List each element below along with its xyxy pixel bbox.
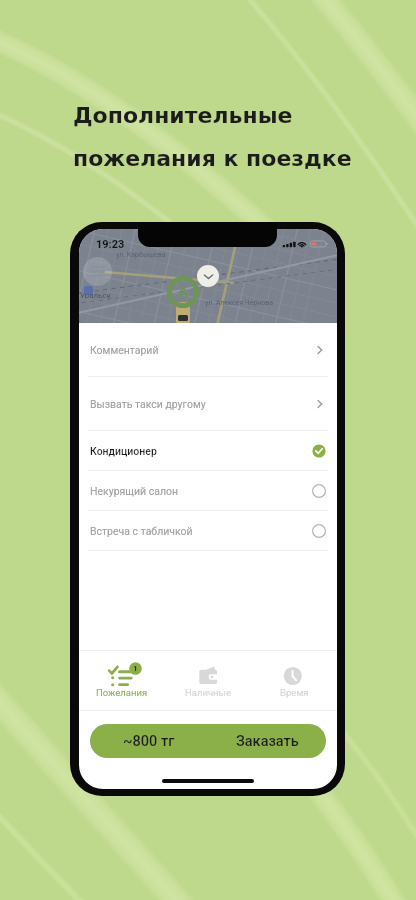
button[interactable]: Время	[251, 651, 337, 710]
button[interactable]: Встреча с табличкой	[79, 511, 337, 550]
staticText: Дополнительные	[73, 103, 293, 129]
button[interactable]: Collapse map	[197, 265, 219, 287]
staticText: Время	[280, 687, 309, 698]
staticText: ул. Алексея Чернова	[205, 299, 274, 307]
staticText: Вызвать такси другому	[90, 398, 206, 410]
button[interactable]: Menu	[83, 257, 112, 286]
staticText: Некурящий салон	[90, 485, 179, 497]
staticText: пожелания к поездке	[73, 146, 352, 172]
staticText: Уральск	[80, 291, 111, 300]
staticText: ~800 тг	[123, 733, 175, 750]
staticText: Пожелания	[96, 687, 148, 698]
staticText: Заказать	[236, 733, 299, 750]
staticText: 1	[133, 664, 138, 673]
button[interactable]: Вызвать такси другому	[79, 377, 337, 430]
button[interactable]: Наличные	[165, 651, 251, 710]
staticText: Комментарий	[90, 344, 159, 356]
button[interactable]: Комментарий	[79, 323, 337, 376]
staticText: ул. Карбышева	[116, 251, 166, 259]
staticText: Кондиционер	[90, 445, 157, 457]
staticText: Наличные	[185, 687, 231, 698]
button[interactable]: ~800 тг	[90, 724, 326, 758]
button[interactable]: 1	[79, 651, 165, 710]
staticText: 19:23	[96, 238, 125, 251]
button[interactable]: Некурящий салон	[79, 471, 337, 510]
staticText: Встреча с табличкой	[90, 525, 193, 537]
button[interactable]: Кондиционер	[79, 431, 337, 470]
staticText: A	[177, 282, 189, 302]
